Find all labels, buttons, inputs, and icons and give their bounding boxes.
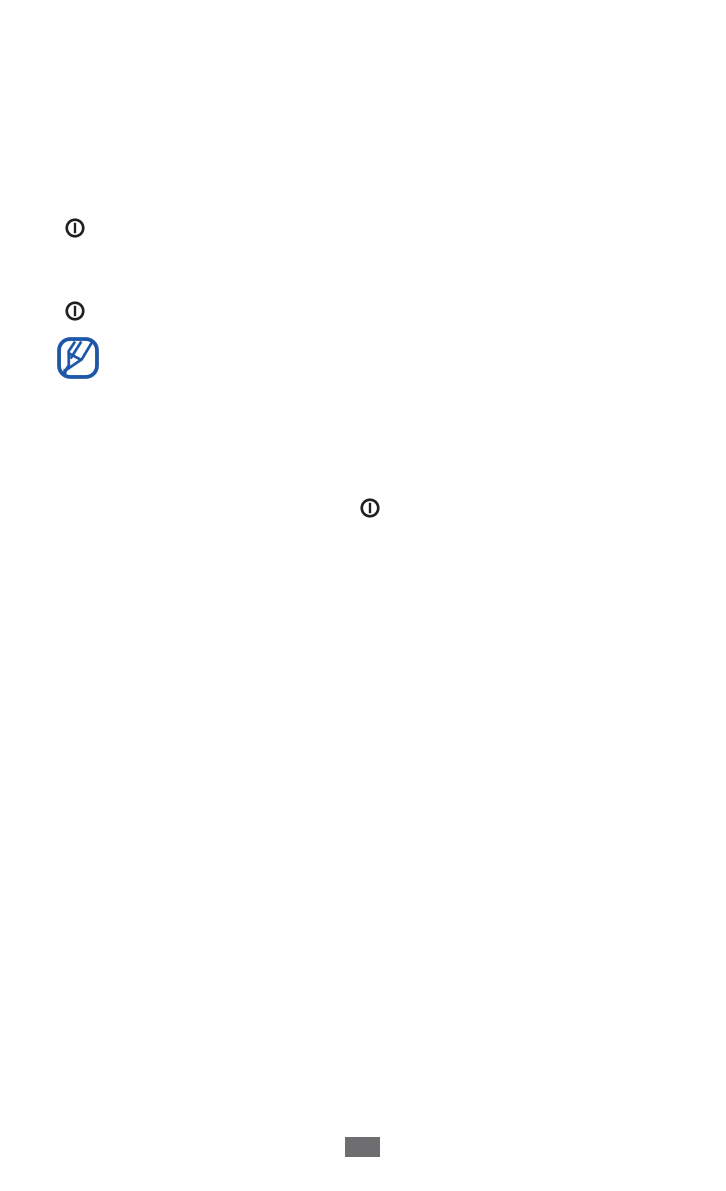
button[interactable]: Caution [65,301,85,321]
button[interactable]: Caution [360,498,380,518]
button[interactable]: Caution [65,218,85,238]
button[interactable]: Note [56,336,100,380]
